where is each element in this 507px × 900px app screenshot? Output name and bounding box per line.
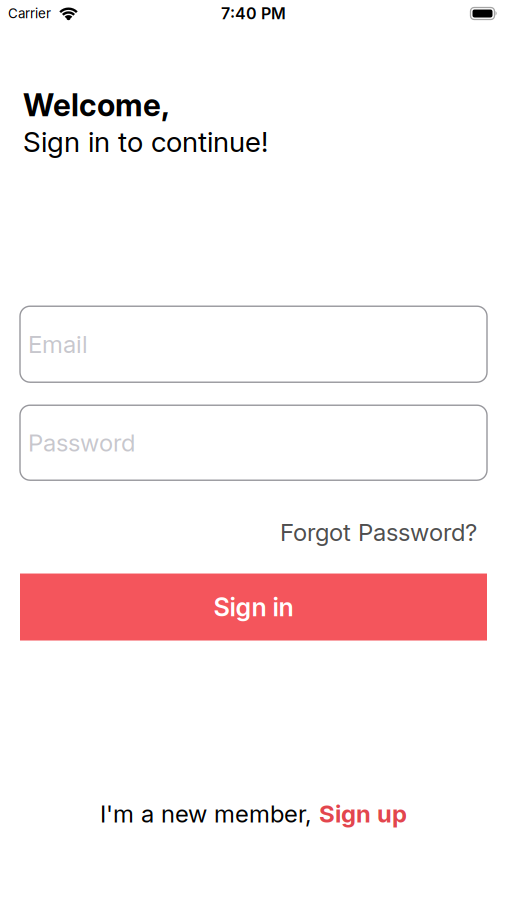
staticText: Sign in to continue!: [23, 125, 268, 158]
staticText: Sign up: [319, 800, 407, 828]
staticText: 7:40 PM: [221, 4, 286, 23]
button[interactable]: I'm a new member,: [100, 800, 407, 828]
staticText: I'm a new member,: [100, 800, 319, 828]
staticText: Sign in: [213, 592, 293, 622]
staticText: Email: [28, 330, 88, 358]
staticText: Carrier: [8, 6, 51, 21]
button[interactable]: Sign in: [20, 573, 487, 640]
staticText: Welcome,: [23, 87, 170, 123]
staticText: Password: [28, 429, 135, 457]
button[interactable]: Forgot Password?: [280, 518, 477, 546]
button[interactable]: Email: [20, 306, 487, 382]
staticText: Forgot Password?: [280, 518, 477, 546]
button[interactable]: Password: [20, 405, 487, 480]
